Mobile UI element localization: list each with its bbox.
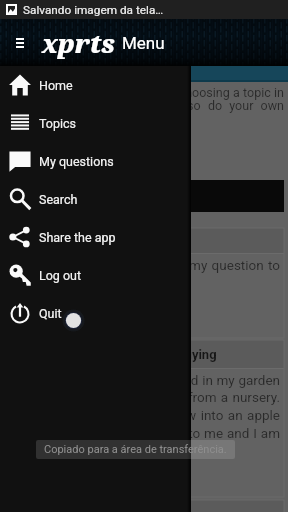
staticText: Quit (39, 306, 62, 321)
staticText: Topics (39, 116, 77, 131)
button[interactable]: Which apple tree am I surely buying (4, 340, 284, 497)
staticText: Log out (39, 268, 82, 283)
button[interactable]: My questions (0, 142, 191, 180)
button[interactable]: Home (0, 66, 191, 104)
staticText: Search (39, 192, 78, 207)
staticText: Share the app (39, 230, 116, 245)
button[interactable]: Share the app (0, 218, 191, 256)
button[interactable]: What to do next (4, 500, 284, 512)
staticText: You can ask a new question by choosing a… (4, 85, 284, 113)
staticText: Menu (122, 33, 165, 53)
staticText: My questions (39, 154, 114, 169)
button[interactable] (4, 180, 284, 212)
staticText: Home (39, 78, 73, 93)
staticText: xprts (42, 26, 116, 60)
staticText: Is it possible for me to move my questio… (9, 257, 280, 273)
button[interactable]: Search (0, 180, 191, 218)
button[interactable]: Topics (0, 104, 191, 142)
staticText: Salvando imagem da tela… (23, 3, 164, 17)
button[interactable]: Quit (0, 294, 191, 332)
button[interactable]: Log out (0, 256, 191, 294)
button[interactable]: Open navigation drawer (8, 19, 32, 66)
staticText: Moving a post (9, 233, 92, 248)
staticText: A couple of years ago, I planted in my g… (9, 372, 280, 442)
staticText: Which apple tree am I surely buying (9, 347, 217, 362)
staticText: Copiado para a área de transferência. (44, 443, 227, 456)
button[interactable]: Moving a post (4, 228, 284, 338)
